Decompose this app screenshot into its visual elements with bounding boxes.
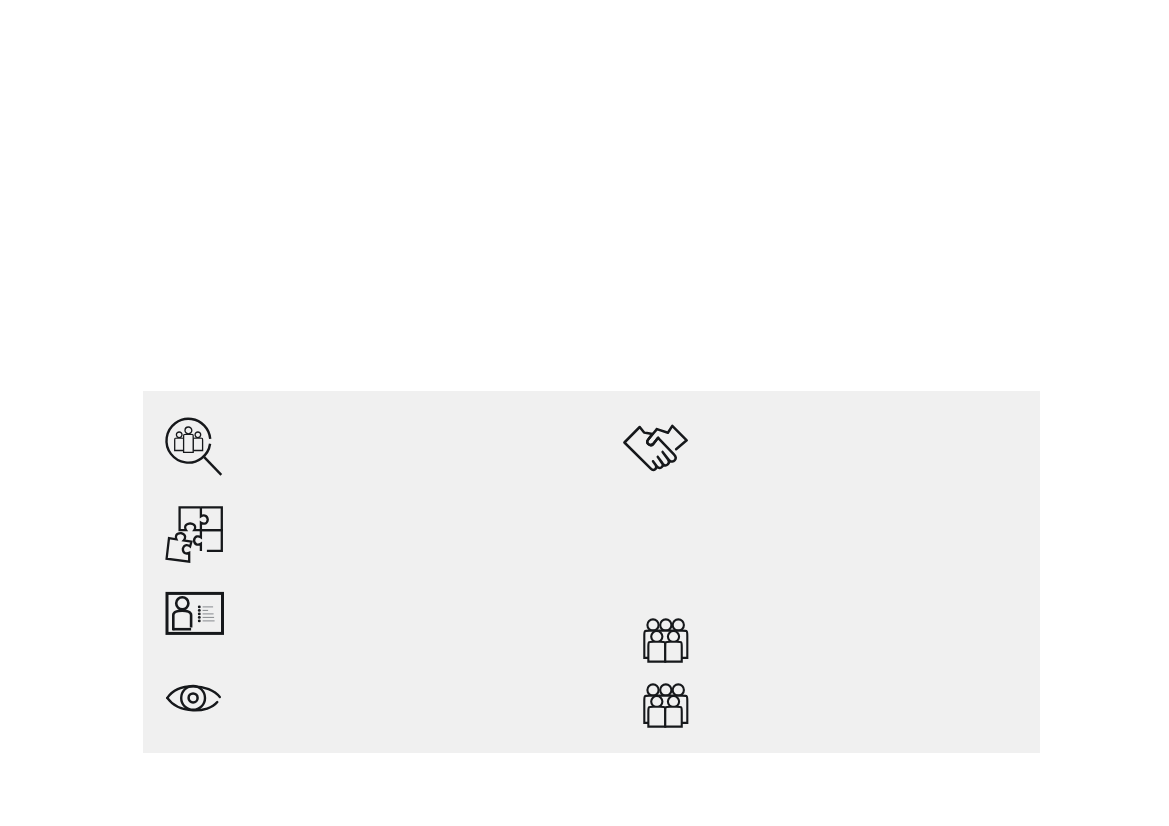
button[interactable]: Visibility: [160, 678, 228, 720]
button[interactable]: Community: [638, 676, 697, 736]
button[interactable]: Profile card: [159, 585, 231, 642]
button[interactable]: Team: [638, 611, 697, 671]
button[interactable]: Search people: [158, 410, 230, 484]
button[interactable]: Puzzle piece: [159, 492, 231, 572]
button[interactable]: Partnership: [614, 414, 696, 482]
